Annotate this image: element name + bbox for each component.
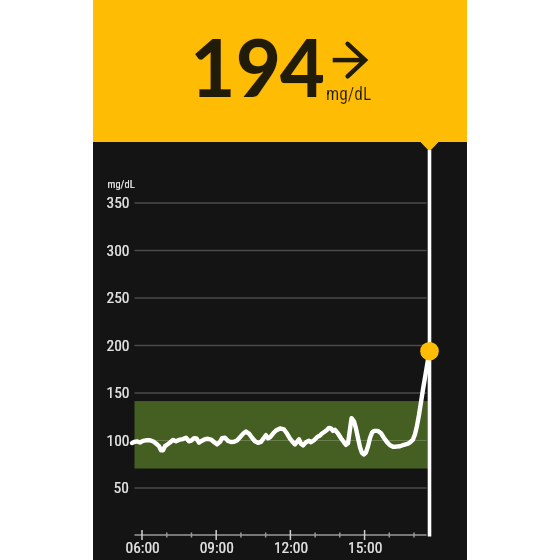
button[interactable]: Glucose graph widget (0, 0, 560, 560)
